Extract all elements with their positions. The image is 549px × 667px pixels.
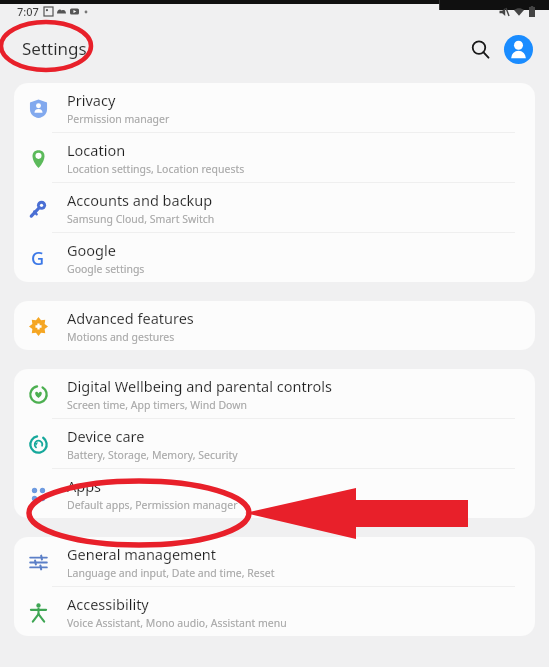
button[interactable]: Accounts and backup [14, 183, 535, 232]
button[interactable]: Apps [14, 469, 535, 518]
button[interactable]: Location [14, 133, 535, 182]
staticText: Motions and gestures [67, 330, 175, 344]
staticText: Settings [22, 37, 87, 60]
staticText: Battery, Storage, Memory, Security [67, 448, 238, 462]
button[interactable]: Device care [14, 419, 535, 468]
staticText: Digital Wellbeing and parental controls [67, 376, 332, 396]
staticText: Device care [67, 426, 145, 446]
staticText: Privacy [67, 90, 116, 110]
staticText: Accounts and backup [67, 190, 213, 210]
button[interactable]: Digital Wellbeing and parental controls [14, 369, 535, 418]
staticText: G [31, 246, 45, 271]
staticText: Voice Assistant, Mono audio, Assistant m… [67, 616, 287, 630]
staticText: Google [67, 240, 116, 260]
button[interactable]: Search [463, 32, 497, 66]
staticText: Location settings, Location requests [67, 162, 245, 176]
staticText: Google settings [67, 262, 145, 276]
button[interactable]: General management [14, 537, 535, 586]
button[interactable]: G [14, 233, 535, 282]
staticText: Default apps, Permission manager [67, 498, 238, 512]
staticText: Location [67, 140, 126, 160]
staticText: Accessibility [67, 594, 149, 614]
button[interactable]: Privacy [14, 83, 535, 132]
staticText: Screen time, App timers, Wind Down [67, 398, 247, 412]
staticText: Permission manager [67, 112, 170, 126]
staticText: Advanced features [67, 308, 194, 328]
button[interactable]: Accessibility [14, 587, 535, 636]
button[interactable]: Account [501, 32, 535, 66]
staticText: Language and input, Date and time, Reset [67, 566, 275, 580]
staticText: General management [67, 544, 217, 564]
staticText: 7:07 [17, 4, 39, 19]
staticText: Samsung Cloud, Smart Switch [67, 212, 215, 226]
button[interactable]: Advanced features [14, 301, 535, 350]
staticText: Apps [67, 476, 102, 496]
